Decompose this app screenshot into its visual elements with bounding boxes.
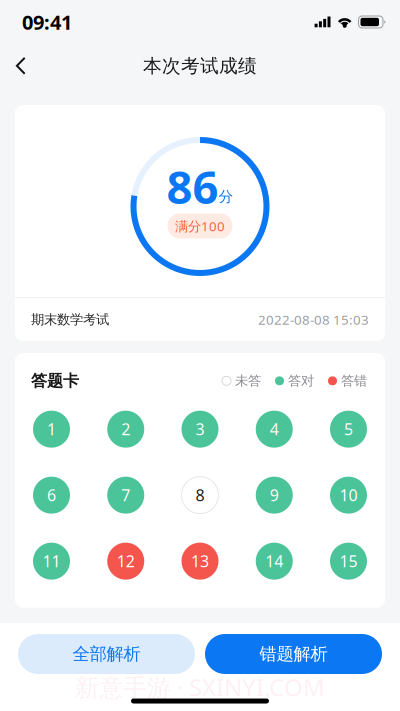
staticText: 15 [339, 550, 357, 572]
staticText: 7 [121, 484, 130, 506]
staticText: 8 [195, 484, 204, 506]
button[interactable]: 14 [256, 543, 293, 580]
staticText: 新意手游 · SXINYI.COM [75, 671, 325, 703]
button[interactable]: 8 [181, 477, 218, 514]
button[interactable]: 1 [33, 411, 70, 448]
button[interactable]: 错题解析 [205, 634, 382, 674]
button[interactable]: 9 [256, 477, 293, 514]
button[interactable]: 12 [107, 543, 144, 580]
staticText: 12 [117, 550, 135, 572]
button[interactable]: 4 [256, 411, 293, 448]
staticText: 分 [218, 188, 233, 206]
staticText: 3 [195, 418, 204, 440]
staticText: 答错 [341, 373, 367, 389]
staticText: 期末数学考试 [31, 311, 109, 328]
staticText: 答题卡 [31, 371, 79, 391]
button[interactable]: 11 [33, 543, 70, 580]
button[interactable]: 7 [107, 477, 144, 514]
button[interactable]: 3 [181, 411, 218, 448]
staticText: 错题解析 [259, 643, 327, 665]
staticText: 5 [344, 418, 353, 440]
staticText: 2022-08-08 15:03 [258, 311, 369, 328]
button[interactable]: 全部解析 [18, 634, 195, 674]
staticText: 未答 [235, 373, 261, 389]
staticText: 10 [339, 484, 357, 506]
button[interactable]: 15 [330, 543, 367, 580]
button[interactable]: 10 [330, 477, 367, 514]
button[interactable]: 6 [33, 477, 70, 514]
staticText: 9 [270, 484, 279, 506]
staticText: 满分100 [175, 217, 225, 235]
staticText: 答对 [288, 373, 314, 389]
button[interactable]: 2 [107, 411, 144, 448]
button[interactable]: 13 [181, 543, 218, 580]
staticText: 14 [265, 550, 283, 572]
button[interactable]: Back [0, 45, 46, 86]
button[interactable]: 5 [330, 411, 367, 448]
staticText: 6 [47, 484, 56, 506]
staticText: 1 [47, 418, 56, 440]
staticText: 11 [42, 550, 60, 572]
staticText: 本次考试成绩 [143, 54, 257, 77]
staticText: 13 [191, 550, 209, 572]
staticText: 全部解析 [72, 643, 140, 665]
staticText: 09:41 [22, 9, 72, 35]
staticText: 4 [270, 418, 279, 440]
staticText: 2 [121, 418, 130, 440]
staticText: 86 [166, 156, 218, 217]
